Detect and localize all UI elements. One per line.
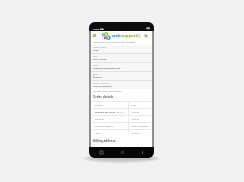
staticText: ▴▮▮ (146, 27, 150, 30)
button[interactable]: Cart (143, 33, 149, 39)
button[interactable]: Recent apps (138, 148, 146, 156)
staticText: Order details (93, 95, 114, 99)
staticText: 4876 (93, 49, 99, 52)
staticText: ₹600.00 (131, 118, 140, 121)
staticText: Thank you. Your order has been received. (93, 41, 136, 44)
staticText: PAYMENT METHOD: (93, 82, 109, 84)
staticText: Product (95, 104, 104, 107)
button[interactable]: Menu (92, 33, 97, 38)
staticText: Total (131, 104, 136, 107)
staticText: EMAIL: (93, 64, 99, 66)
staticText: TOTAL: (93, 73, 99, 75)
staticText: Subtotal: (95, 118, 105, 121)
staticText: Cash on delivery (131, 125, 148, 128)
button[interactable]: Home (118, 148, 126, 156)
staticText: web (112, 33, 121, 39)
staticText: support (121, 33, 138, 39)
staticText: Cash on delivery (93, 85, 112, 88)
staticText: Dhandal Rafaed 50 - 1L × 1 (95, 111, 124, 114)
staticText: Total: (95, 132, 101, 135)
staticText: Pay with cash upon delivery. (93, 90, 122, 93)
staticText: ₹600.00 (93, 76, 102, 79)
button[interactable]: Search (136, 33, 142, 39)
staticText: May 3, 2018 (93, 58, 107, 61)
button[interactable]: Back (97, 148, 105, 156)
staticText: ahmed2015@gmail.com (93, 67, 121, 70)
staticText: ₹600.00 (131, 111, 140, 114)
staticText: 10:04 ▪▪ (93, 27, 104, 30)
staticText: Payment method: (95, 125, 114, 128)
staticText: DATE: (93, 55, 98, 57)
staticText: Billing address (93, 139, 116, 143)
staticText: ORDER NUMBER: (93, 46, 107, 48)
staticText: ₹600.00 (131, 132, 140, 135)
